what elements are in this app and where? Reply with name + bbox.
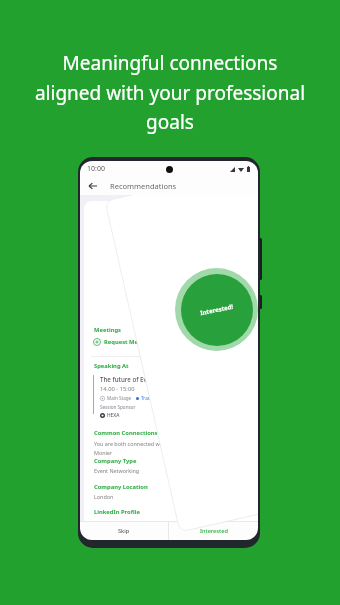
staticText: Interested! bbox=[199, 303, 234, 317]
staticText: Company Location bbox=[94, 483, 148, 491]
button[interactable]: Skip bbox=[80, 522, 168, 540]
staticText: You are both connected with Monier bbox=[94, 440, 170, 456]
staticText: The future of Events bbox=[100, 375, 160, 383]
staticText: Event Networking bbox=[94, 467, 140, 474]
staticText: Track bbox=[141, 395, 153, 401]
staticText: Interested bbox=[200, 527, 228, 535]
button[interactable]: Request Meeting bbox=[93, 338, 154, 346]
staticText: Skip bbox=[118, 527, 130, 535]
staticText: Speaking At bbox=[94, 362, 129, 370]
staticText: Meaningful connections aligned with your… bbox=[30, 50, 310, 134]
button[interactable]: Back bbox=[86, 179, 100, 193]
staticText: HEXA bbox=[107, 412, 120, 419]
staticText: Company Type bbox=[94, 457, 137, 465]
staticText: 10:00 bbox=[87, 164, 105, 174]
staticText: Recommendations bbox=[110, 181, 177, 191]
staticText: Request Meeting bbox=[104, 338, 154, 346]
staticText: London bbox=[94, 493, 114, 500]
staticText: 14.00 - 15:00 bbox=[100, 385, 135, 393]
staticText: Meetings bbox=[94, 326, 121, 334]
staticText: Common Connections bbox=[94, 429, 158, 437]
button[interactable]: Interested bbox=[169, 522, 258, 540]
staticText: Session Sponsor bbox=[100, 404, 136, 410]
staticText: Main Stage bbox=[107, 395, 132, 401]
staticText: LinkedIn Profile bbox=[94, 508, 140, 516]
